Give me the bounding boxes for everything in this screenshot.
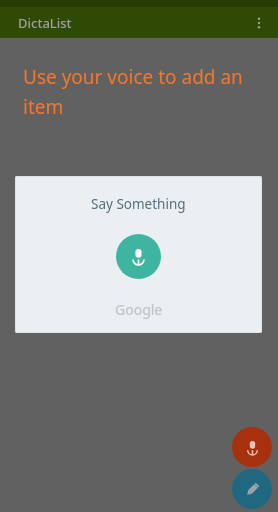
staticText: Say Something	[91, 195, 186, 213]
staticText: DictaList	[18, 14, 72, 32]
button[interactable]: Add item by voice	[232, 427, 272, 467]
staticText: Use your voice to add an item	[23, 64, 255, 119]
staticText: Google	[115, 300, 163, 319]
button[interactable]: Add item by typing	[232, 469, 272, 509]
button[interactable]: More options	[244, 8, 274, 38]
button[interactable]: Start voice input	[116, 234, 161, 279]
